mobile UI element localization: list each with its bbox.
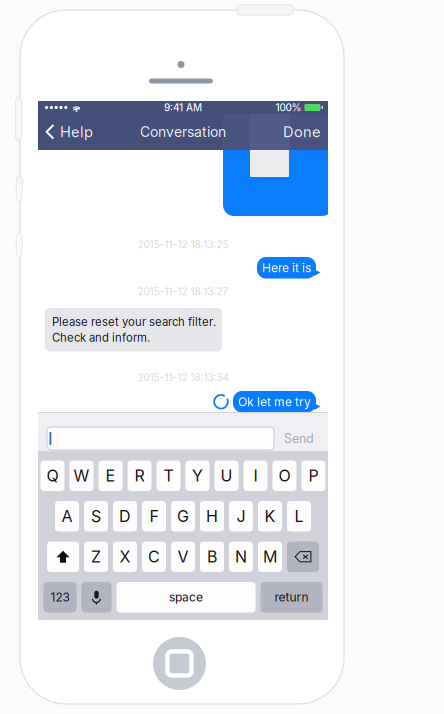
button[interactable]: J bbox=[229, 501, 253, 531]
button[interactable]: return bbox=[260, 582, 322, 612]
staticText: X bbox=[119, 547, 130, 566]
staticText: return bbox=[274, 590, 308, 604]
staticText: 2015-11-12 18:13:25 bbox=[137, 238, 228, 251]
staticText: Done bbox=[283, 123, 321, 141]
button[interactable]: 123 bbox=[43, 582, 76, 612]
staticText: 2015-11-12 18:13:27 bbox=[137, 285, 228, 298]
staticText: G bbox=[177, 507, 189, 526]
staticText: W bbox=[73, 466, 89, 485]
button[interactable]: U bbox=[214, 460, 238, 491]
button[interactable]: H bbox=[200, 501, 224, 531]
button[interactable]: T bbox=[156, 460, 180, 491]
button[interactable]: Shift bbox=[47, 541, 79, 572]
staticText: S bbox=[91, 507, 101, 526]
staticText: Y bbox=[192, 466, 203, 485]
button[interactable]: Home bbox=[153, 637, 206, 690]
staticText: N bbox=[235, 547, 247, 566]
button[interactable]: A bbox=[55, 501, 79, 531]
staticText: B bbox=[207, 547, 217, 566]
button[interactable]: D bbox=[113, 501, 137, 531]
button[interactable]: M bbox=[258, 541, 282, 572]
staticText: M bbox=[263, 547, 277, 566]
button[interactable]: Dictate bbox=[81, 582, 111, 612]
staticText: 100% bbox=[275, 101, 301, 114]
staticText: U bbox=[220, 466, 232, 485]
button[interactable]: V bbox=[171, 541, 195, 572]
button[interactable]: N bbox=[229, 541, 253, 572]
staticText: T bbox=[163, 466, 173, 485]
staticText: 2015-11-12 18:13:34 bbox=[137, 371, 228, 384]
staticText: Help bbox=[60, 123, 93, 141]
button[interactable]: Done bbox=[267, 114, 328, 150]
staticText: C bbox=[148, 547, 160, 566]
staticText: L bbox=[294, 507, 303, 526]
staticText: Check and inform. bbox=[52, 331, 150, 344]
button[interactable]: E bbox=[98, 460, 122, 491]
staticText: I bbox=[253, 466, 257, 485]
staticText: Z bbox=[91, 547, 101, 566]
staticText: A bbox=[61, 507, 72, 526]
button[interactable]: S bbox=[84, 501, 108, 531]
button[interactable]: X bbox=[113, 541, 137, 572]
staticText: Please reset your search filter. bbox=[52, 315, 216, 329]
staticText: 123 bbox=[50, 590, 69, 604]
button[interactable]: B bbox=[200, 541, 224, 572]
staticText: P bbox=[308, 466, 318, 485]
button[interactable]: F bbox=[142, 501, 166, 531]
button[interactable]: space bbox=[116, 582, 255, 612]
staticText: Here it is bbox=[262, 260, 311, 275]
button[interactable]: I bbox=[243, 460, 267, 491]
staticText: O bbox=[278, 466, 290, 485]
staticText: Ok let me try bbox=[238, 394, 311, 409]
button[interactable]: R bbox=[127, 460, 151, 491]
staticText: F bbox=[149, 507, 158, 526]
staticText: D bbox=[119, 507, 131, 526]
button[interactable]: W bbox=[69, 460, 93, 491]
button[interactable]: C bbox=[142, 541, 166, 572]
staticText: J bbox=[236, 507, 245, 526]
button[interactable]: Help bbox=[38, 114, 122, 150]
staticText: Q bbox=[46, 466, 58, 485]
button[interactable]: P bbox=[301, 460, 325, 491]
button[interactable]: O bbox=[272, 460, 296, 491]
button[interactable]: Z bbox=[84, 541, 108, 572]
button[interactable]: Send bbox=[277, 427, 321, 450]
staticText: Send bbox=[284, 431, 314, 446]
staticText: V bbox=[177, 547, 188, 566]
button[interactable]: G bbox=[171, 501, 195, 531]
staticText: R bbox=[134, 466, 144, 485]
button[interactable]: Y bbox=[185, 460, 209, 491]
staticText: K bbox=[264, 507, 275, 526]
staticText: 9:41 AM bbox=[164, 101, 202, 114]
staticText: Conversation bbox=[140, 123, 226, 140]
staticText: H bbox=[206, 507, 218, 526]
staticText: space bbox=[169, 590, 203, 604]
button[interactable]: Q bbox=[40, 460, 64, 491]
button[interactable]: L bbox=[287, 501, 311, 531]
button[interactable]: Delete bbox=[287, 541, 319, 572]
staticText: E bbox=[105, 466, 115, 485]
button[interactable]: K bbox=[258, 501, 282, 531]
